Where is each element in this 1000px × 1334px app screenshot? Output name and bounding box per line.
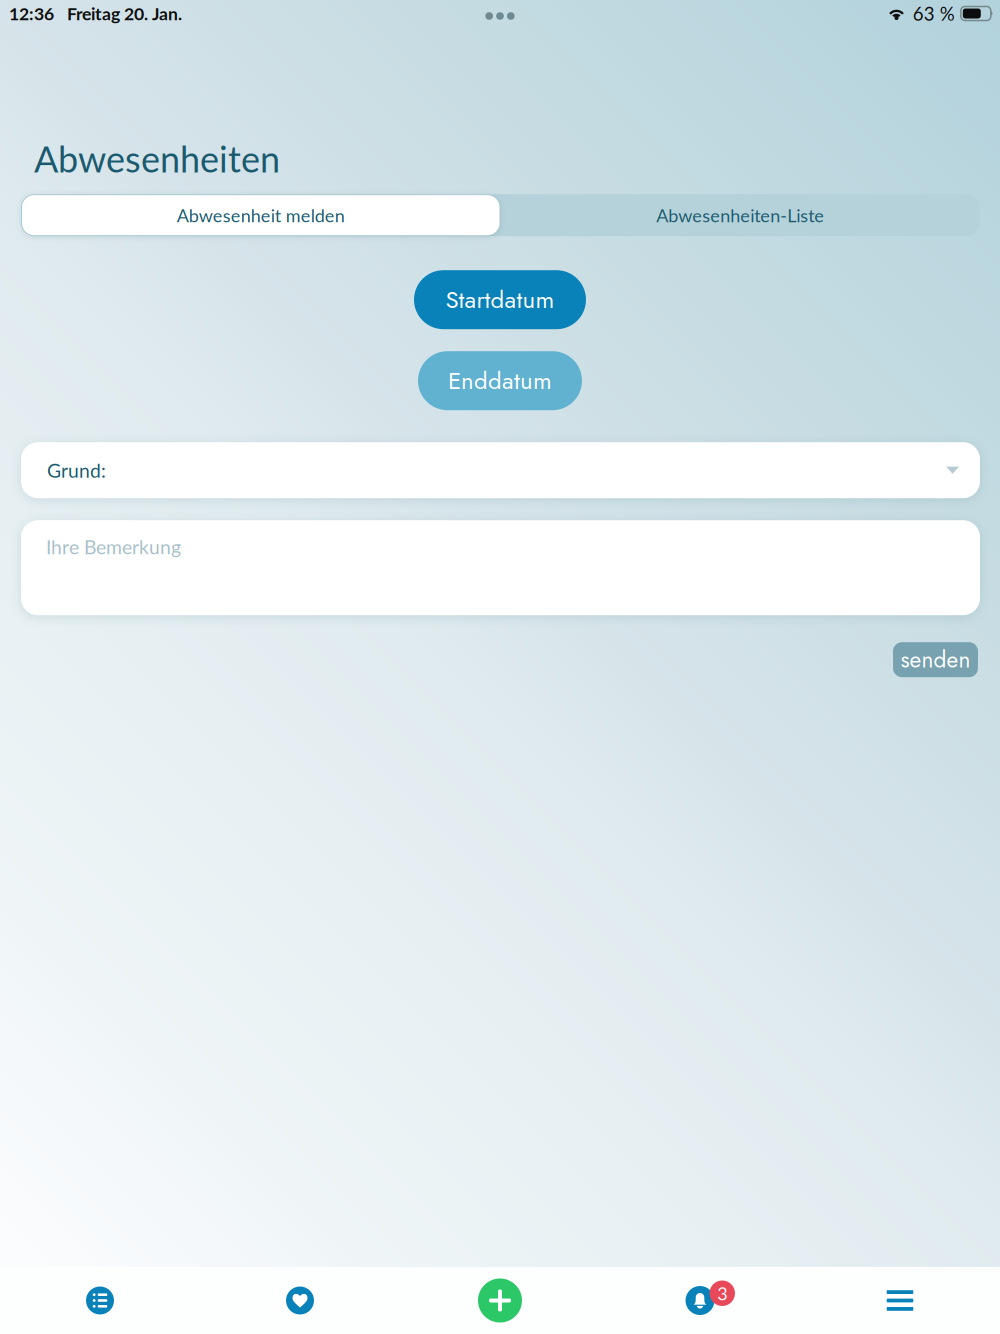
button[interactable]: Favoriten xyxy=(200,1267,400,1334)
button[interactable]: Enddatum xyxy=(418,351,582,410)
staticText: 12:36 xyxy=(9,3,54,24)
staticText: Enddatum xyxy=(448,363,552,398)
staticText: 63 % xyxy=(913,2,955,25)
staticText: Grund: xyxy=(47,459,106,482)
staticText: Ihre Bemerkung xyxy=(46,535,181,558)
staticText: Freitag 20. Jan. xyxy=(67,3,182,24)
button[interactable]: Hinzufügen xyxy=(400,1267,600,1334)
button[interactable]: Liste xyxy=(0,1267,200,1334)
button[interactable]: senden xyxy=(893,642,978,677)
staticText: Abwesenheit melden xyxy=(177,204,345,226)
button[interactable]: Abwesenheit melden xyxy=(21,194,500,236)
staticText: Abwesenheiten xyxy=(34,137,280,180)
button[interactable]: Benachrichtigungen xyxy=(600,1267,800,1334)
button[interactable]: Grund: xyxy=(21,442,980,498)
button[interactable]: Startdatum xyxy=(414,270,586,329)
staticText: Abwesenheiten-Liste xyxy=(656,204,824,226)
button[interactable]: Abwesenheiten-Liste xyxy=(500,194,980,236)
button[interactable]: Menü xyxy=(800,1267,1000,1334)
staticText: Startdatum xyxy=(445,282,554,317)
staticText: senden xyxy=(900,643,970,676)
staticText: 3 xyxy=(717,1282,727,1304)
